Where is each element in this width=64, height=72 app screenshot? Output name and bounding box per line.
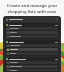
staticText: Create and manage your shopping lists wi… (4, 3, 60, 14)
button[interactable]: Toggle item (5, 57, 59, 72)
button[interactable]: Menu (3, 16, 61, 72)
button[interactable]: Toggle item (5, 23, 59, 39)
button[interactable]: Toggle item (6, 61, 58, 64)
other: Menu (6, 19, 8, 21)
button[interactable]: Toggle item (6, 69, 58, 71)
button[interactable]: Toggle item (6, 48, 58, 51)
button[interactable]: Toggle item (6, 35, 58, 38)
other: Search (56, 19, 58, 21)
button[interactable]: Toggle item (6, 31, 58, 34)
button[interactable]: Menu (5, 17, 59, 22)
button[interactable]: Toggle item (6, 52, 58, 55)
button[interactable]: Toggle item (6, 27, 58, 30)
other: Toggle item (7, 49, 9, 51)
button[interactable]: Toggle item (5, 40, 59, 56)
button[interactable]: Toggle item (6, 44, 58, 47)
button[interactable]: Toggle item (6, 65, 58, 68)
